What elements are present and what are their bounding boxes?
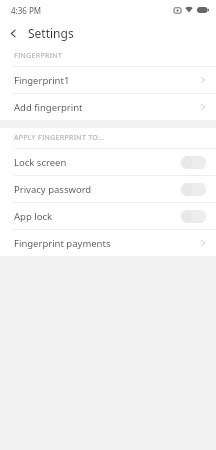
staticText: Add fingerprint: [14, 101, 200, 114]
staticText: FINGERPRINT: [14, 51, 63, 61]
staticText: Fingerprint payments: [14, 237, 200, 250]
button[interactable]: Fingerprint1: [0, 67, 216, 93]
button[interactable]: Add fingerprint: [0, 94, 216, 120]
button[interactable]: App lock: [0, 203, 216, 229]
staticText: Fingerprint1: [14, 74, 200, 87]
staticText: 4:36 PM: [11, 5, 42, 16]
button[interactable]: Privacy password: [0, 176, 216, 202]
staticText: APPLY FINGERPRINT TO...: [14, 133, 105, 143]
button[interactable]: Fingerprint payments: [0, 230, 216, 256]
staticText: App lock: [14, 210, 181, 223]
staticText: Privacy password: [14, 183, 181, 196]
button[interactable]: Back: [0, 20, 26, 46]
staticText: Lock screen: [14, 156, 181, 169]
staticText: Settings: [28, 25, 74, 41]
button[interactable]: Lock screen: [0, 149, 216, 175]
